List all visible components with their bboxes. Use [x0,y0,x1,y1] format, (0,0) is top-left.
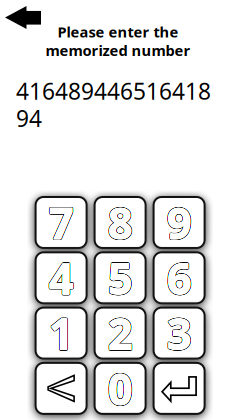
staticText: 5 [108,250,132,306]
staticText: 8 [108,194,132,251]
staticText: 4 [49,250,73,307]
button[interactable]: 9 [154,197,205,248]
staticText: 3 [167,305,191,362]
staticText: 0 [109,359,133,416]
staticText: 1 [49,305,73,361]
staticText: 8 [108,194,132,251]
staticText: 3 [167,305,191,362]
staticText: 0 [108,360,132,416]
staticText: 7 [50,194,74,251]
staticText: 6 [166,249,190,306]
staticText: 7 [49,194,73,251]
staticText: 5 [108,249,132,306]
staticText: 6 [167,249,191,306]
staticText: 2 [108,305,132,362]
staticText: 5 [109,250,133,307]
staticText: 0 [109,360,133,417]
staticText: 0 [108,360,132,417]
staticText: 8 [108,194,132,251]
staticText: 7 [48,194,72,250]
staticText: 9 [168,193,192,250]
staticText: 0 [108,360,132,417]
staticText: 4 [49,249,73,306]
staticText: 4 [49,249,73,306]
staticText: 3 [167,305,191,361]
staticText: 9 [166,194,190,251]
staticText: 6 [167,249,191,306]
staticText: 1 [50,306,74,362]
staticText: 2 [108,306,132,362]
staticText: 0 [109,361,133,417]
staticText: 1 [49,306,73,362]
staticText: 0 [108,360,132,417]
staticText: 416489446516418 [16,76,211,106]
staticText: 5 [108,249,132,306]
button[interactable]: 7 [36,197,87,248]
staticText: Please enter the [57,22,178,41]
staticText: 6 [167,249,191,306]
staticText: 3 [168,306,192,362]
button[interactable]: 3 [154,308,205,359]
staticText: 1 [49,304,73,361]
staticText: 7 [49,194,73,251]
button[interactable]: 8 [95,197,146,248]
staticText: 5 [109,250,133,307]
staticText: 1 [48,304,72,361]
staticText: 4 [48,250,72,307]
staticText: 3 [167,306,191,362]
staticText: 4 [49,249,73,305]
staticText: 8 [108,195,132,252]
staticText: 9 [168,194,192,250]
staticText: 3 [166,305,190,362]
staticText: 5 [108,249,132,306]
staticText: 8 [108,194,132,251]
staticText: 3 [167,304,191,361]
staticText: memorized number [45,40,190,60]
staticText: 8 [109,194,133,251]
staticText: 1 [49,304,73,361]
staticText: 3 [168,305,192,362]
staticText: 6 [167,250,191,307]
button[interactable]: Backspace [36,363,87,414]
staticText: 3 [166,304,190,361]
button[interactable]: 6 [154,252,205,303]
staticText: 7 [49,195,73,252]
staticText: 3 [166,305,190,361]
staticText: 7 [49,194,73,251]
staticText: 0 [108,360,132,417]
button[interactable]: 5 [95,252,146,303]
staticText: 0 [108,360,132,417]
staticText: 4 [48,249,72,306]
staticText: 6 [167,249,191,306]
staticText: 5 [108,249,132,306]
staticText: 8 [108,193,132,250]
staticText: 9 [167,194,191,251]
staticText: 5 [108,250,132,306]
staticText: 0 [109,361,133,418]
staticText: 3 [167,305,191,362]
staticText: 4 [49,249,73,306]
staticText: 7 [48,194,72,251]
staticText: 9 [167,194,191,251]
button[interactable]: Back [0,0,47,35]
button[interactable]: 0 [95,363,146,414]
staticText: 5 [108,250,132,306]
button[interactable]: Enter [154,363,205,414]
staticText: 6 [167,249,191,306]
staticText: 2 [108,305,132,362]
staticText: 5 [108,250,132,307]
staticText: 5 [108,249,132,306]
staticText: 7 [49,194,73,251]
staticText: 4 [50,250,74,307]
staticText: 4 [49,250,73,306]
staticText: 5 [109,249,133,306]
button[interactable]: 2 [95,308,146,359]
staticText: 7 [50,195,74,251]
staticText: 2 [108,304,132,361]
staticText: 94 [16,103,42,133]
button[interactable]: 4 [36,252,87,303]
staticText: 0 [108,360,132,416]
staticText: 8 [109,195,133,252]
staticText: 6 [167,250,191,306]
button[interactable]: 1 [36,308,87,359]
